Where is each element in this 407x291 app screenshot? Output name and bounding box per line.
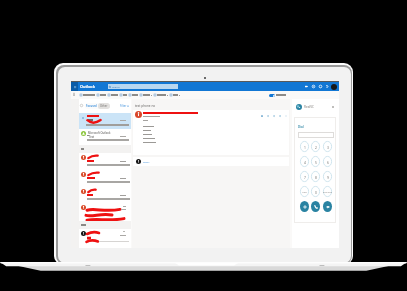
button[interactable]: 8 [311, 171, 320, 182]
staticText: Dial [298, 125, 304, 129]
button[interactable]: Attachment [260, 114, 263, 117]
button[interactable]: Help [317, 82, 324, 91]
button[interactable] [79, 113, 131, 129]
button[interactable]: Video call [300, 201, 309, 212]
button[interactable]: App launcher [71, 82, 78, 91]
button[interactable]: BACK SPACE [323, 186, 332, 197]
button[interactable]: Microsoft Outlook [79, 129, 131, 145]
button[interactable]: 2 [311, 141, 320, 152]
staticText: BACK SPACE [323, 191, 332, 193]
button[interactable]: Reply [266, 114, 269, 117]
button[interactable]: Account [331, 84, 337, 90]
staticText: Other [100, 104, 108, 108]
staticText: test phone no [135, 104, 156, 108]
staticText: 3 [327, 145, 329, 149]
button[interactable]: Sweep [129, 94, 138, 96]
button[interactable]: Focused [85, 103, 110, 109]
button[interactable]: 1 [300, 141, 309, 152]
button[interactable]: Archive [108, 94, 118, 96]
button[interactable]: Filter [120, 104, 129, 108]
button[interactable]: 7 [300, 171, 309, 182]
button[interactable]: Call [311, 201, 320, 212]
button[interactable]: Move to [140, 94, 152, 96]
staticText: 2 [315, 145, 317, 149]
staticText: 5 [315, 160, 317, 164]
staticText: 9 [327, 175, 329, 179]
button[interactable] [79, 203, 131, 221]
button[interactable]: More actions [284, 114, 287, 117]
button[interactable]: Junk [120, 94, 127, 96]
staticText: RealVC [304, 105, 314, 109]
button[interactable]: 6 [323, 156, 332, 167]
staticText: 4 [304, 160, 306, 164]
staticText: Test [89, 135, 94, 138]
button[interactable]: Meet now [303, 82, 310, 91]
staticText: Outlook [80, 84, 95, 89]
staticText: Microsoft Outlook [88, 131, 111, 135]
button[interactable]: Reply [133, 157, 289, 166]
button[interactable]: 3 [323, 141, 332, 152]
button[interactable]: 5 [311, 156, 320, 167]
button[interactable] [79, 187, 131, 203]
staticText: 1 [304, 145, 306, 149]
staticText: 0 [315, 190, 317, 194]
button[interactable]: Search [108, 84, 178, 89]
button[interactable]: Focused Inbox toggle [269, 91, 286, 99]
button[interactable]: CLEAR [300, 186, 309, 197]
staticText: 6 [327, 160, 329, 164]
button[interactable]: 4 [300, 156, 309, 167]
button[interactable] [79, 170, 131, 187]
button[interactable]: Number input [298, 132, 334, 138]
button[interactable]: 9 [323, 171, 332, 182]
button[interactable]: Categorize [154, 94, 168, 96]
button[interactable]: New message [80, 94, 95, 96]
button[interactable]: Close [331, 105, 335, 109]
staticText: 8 [315, 175, 317, 179]
button[interactable]: Delete [97, 94, 106, 96]
staticText: Reply [143, 160, 150, 163]
button[interactable]: 0 [311, 186, 320, 197]
button[interactable]: Settings [310, 82, 317, 91]
staticText: Focused [86, 104, 97, 108]
staticText: CLEAR [302, 191, 307, 193]
button[interactable]: Reply all [272, 114, 275, 117]
button[interactable]: Undo [170, 94, 180, 96]
button[interactable] [79, 153, 131, 170]
staticText: 7 [304, 175, 306, 179]
button[interactable]: Outlook [80, 82, 95, 91]
button[interactable] [79, 229, 131, 246]
button[interactable]: Message [323, 201, 332, 212]
button[interactable]: Forward [278, 114, 281, 117]
button[interactable]: Feedback [324, 82, 331, 91]
staticText: Filter [120, 104, 127, 108]
staticText: Search [112, 85, 120, 88]
